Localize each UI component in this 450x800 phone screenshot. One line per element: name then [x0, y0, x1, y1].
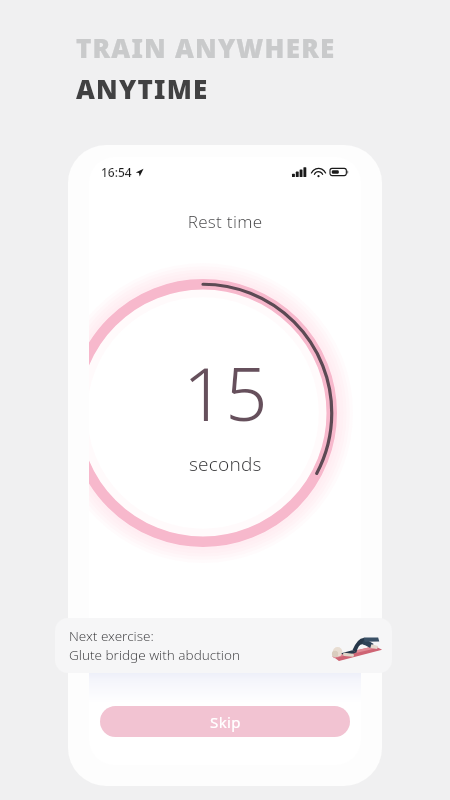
button[interactable]: Next exercise:: [55, 618, 392, 673]
staticText: Glute bridge with abduction: [69, 646, 240, 664]
staticText: ANYTIME: [76, 71, 209, 106]
staticText: seconds: [189, 451, 262, 477]
other: Glute bridge with abduction illustration: [330, 625, 386, 667]
button[interactable]: Skip: [100, 706, 350, 737]
staticText: Skip: [210, 712, 241, 732]
staticText: 16:54: [101, 164, 132, 180]
staticText: TRAIN ANYWHERE: [76, 30, 336, 65]
staticText: Rest time: [89, 210, 361, 233]
staticText: 15: [183, 342, 268, 443]
staticText: Next exercise:: [69, 627, 154, 645]
